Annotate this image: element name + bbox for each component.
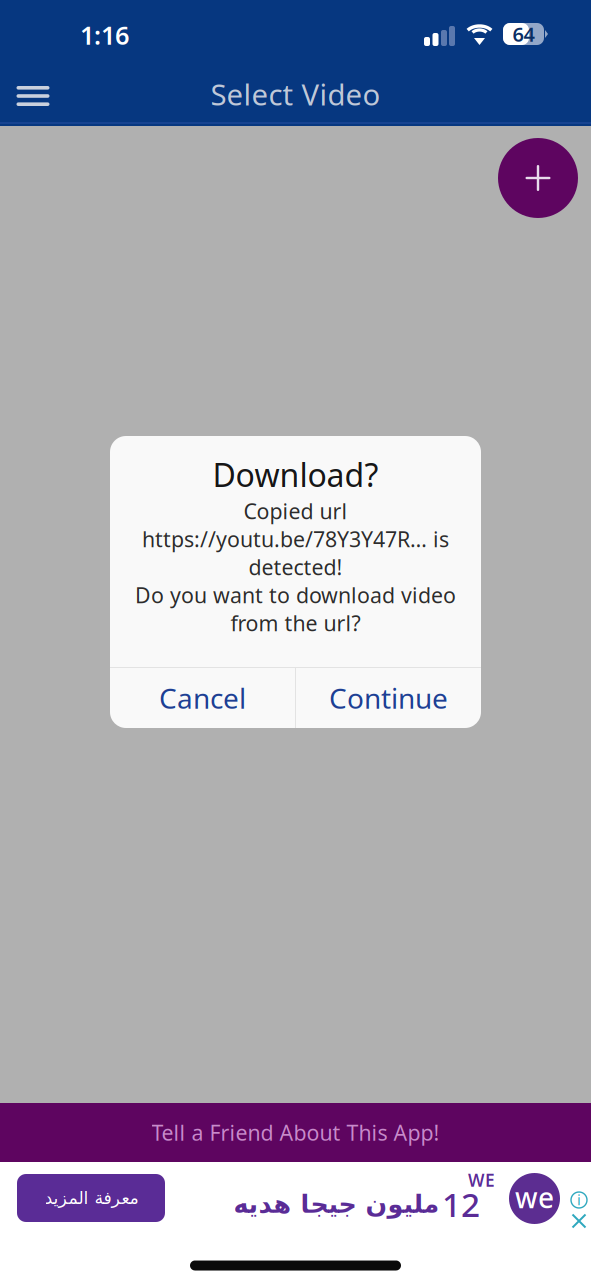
staticText: 1:16: [80, 18, 129, 52]
staticText: from the url?: [230, 609, 360, 637]
button[interactable]: معرفة المزيد: [17, 1174, 165, 1222]
staticText: we: [515, 1179, 554, 1216]
staticText: WE: [468, 1168, 495, 1191]
staticText: 64: [512, 21, 534, 47]
button[interactable]: Ad information: [567, 1188, 591, 1212]
staticText: 12: [442, 1182, 480, 1226]
staticText: https://youtu.be/78Y3Y47R… is: [142, 525, 449, 553]
staticText: Tell a Friend About This App!: [151, 1118, 439, 1147]
button[interactable]: Close ad: [567, 1209, 591, 1233]
staticText: Select Video: [210, 74, 380, 113]
staticText: Do you want to download video: [135, 581, 456, 609]
button[interactable]: Tell a Friend About This App!: [0, 1103, 591, 1162]
staticText: Continue: [329, 679, 448, 717]
staticText: معرفة المزيد: [44, 1188, 138, 1208]
button[interactable]: Add video: [498, 138, 578, 218]
button[interactable]: Cancel: [110, 668, 295, 728]
staticText: detected!: [248, 553, 342, 581]
staticText: i: [577, 1190, 581, 1209]
staticText: Download?: [212, 453, 378, 496]
button[interactable]: Menu: [0, 69, 66, 123]
staticText: Cancel: [159, 679, 246, 717]
button[interactable]: Continue: [296, 668, 481, 728]
staticText: Copied url: [243, 497, 347, 525]
staticText: مليون جيجا هديه: [233, 1190, 439, 1218]
